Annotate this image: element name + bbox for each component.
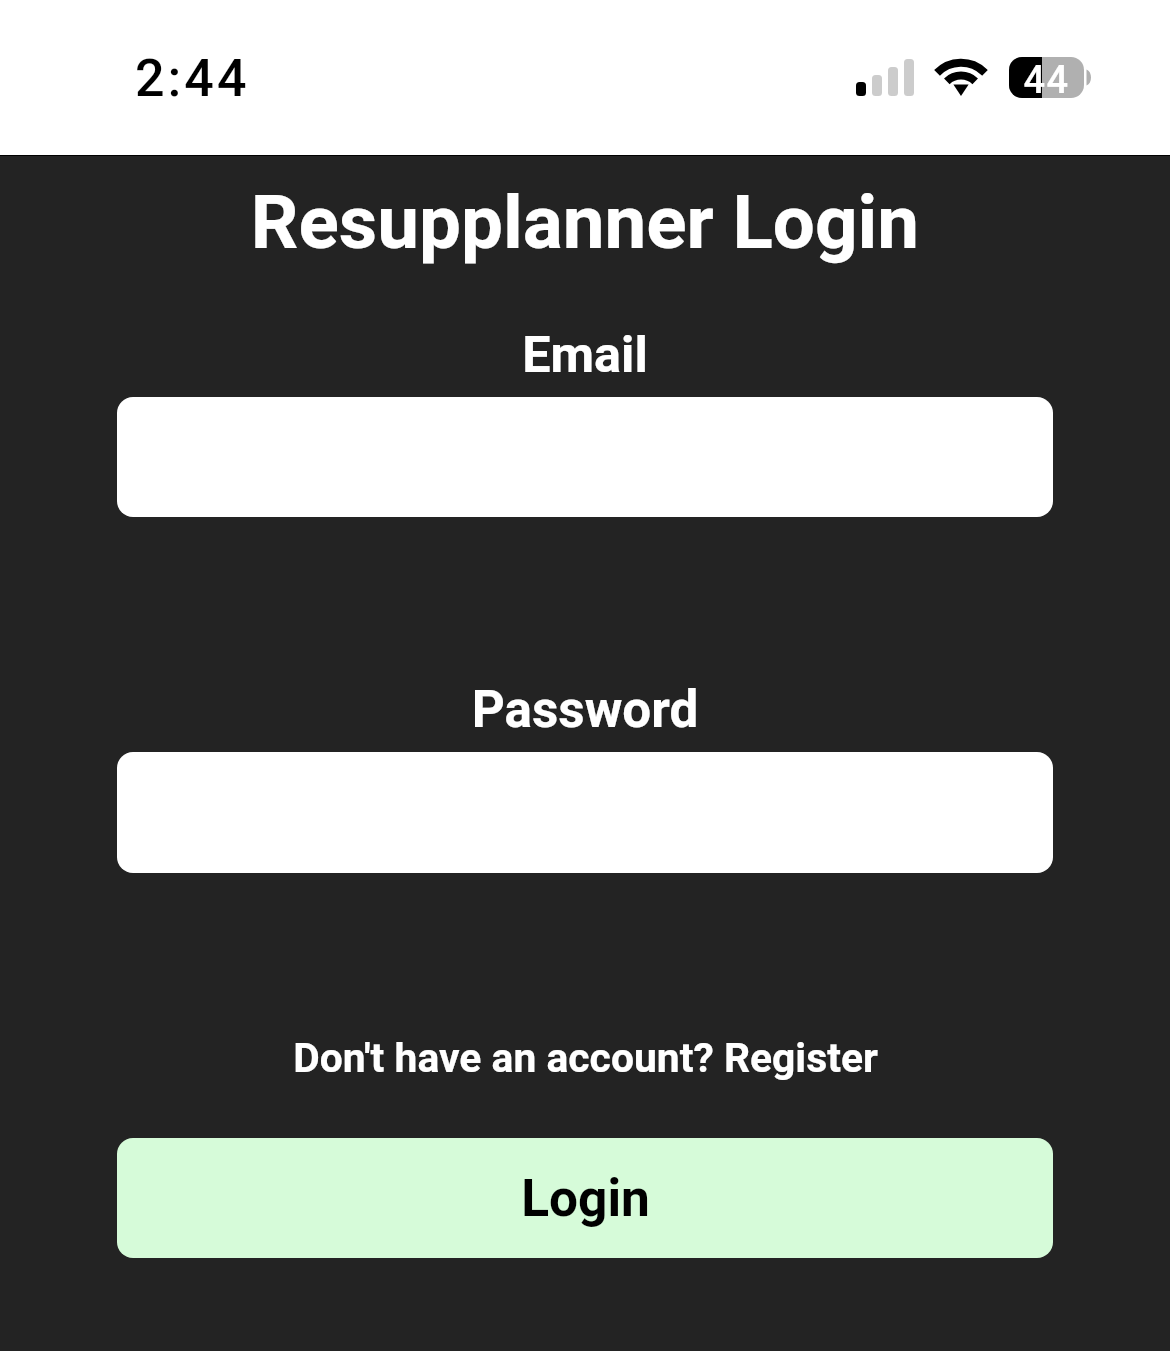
other: Cellular signal strength	[856, 56, 914, 96]
staticText: 44	[1022, 58, 1071, 100]
staticText: Password	[0, 679, 1170, 739]
staticText: Don't have an account? Register	[293, 1034, 878, 1082]
staticText: 2:44	[135, 48, 250, 109]
button[interactable]: Login	[117, 1138, 1053, 1258]
button[interactable]: Don't have an account? Register	[117, 1025, 1053, 1091]
staticText: Resupplanner Login	[0, 179, 1170, 266]
button[interactable]: Email input field	[117, 397, 1053, 517]
staticText: Login	[521, 1168, 650, 1228]
button[interactable]: Password input field	[117, 752, 1053, 873]
other: Wi-Fi	[935, 58, 987, 102]
staticText: Email	[0, 325, 1170, 384]
other: Battery 44 percent	[1009, 57, 1091, 99]
